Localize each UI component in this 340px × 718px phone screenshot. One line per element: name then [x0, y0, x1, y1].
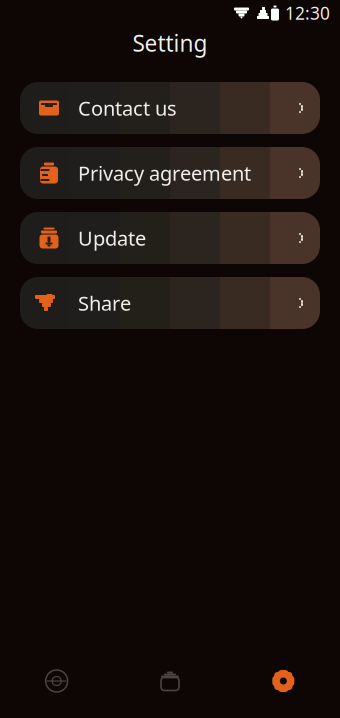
staticText: Setting	[132, 28, 207, 58]
button[interactable]: Share	[20, 277, 320, 329]
button[interactable]: Privacy agreement	[20, 147, 320, 199]
button[interactable]: Home	[113, 653, 227, 709]
button[interactable]: Explore	[0, 653, 113, 709]
button[interactable]: Update	[20, 212, 320, 264]
staticText: Share	[78, 290, 131, 316]
button[interactable]: Contact us	[20, 82, 320, 134]
staticText: Contact us	[78, 95, 177, 121]
staticText: 12:30	[285, 1, 330, 24]
staticText: Privacy agreement	[78, 160, 251, 186]
staticText: Update	[78, 225, 146, 251]
button[interactable]: Settings	[227, 653, 340, 709]
